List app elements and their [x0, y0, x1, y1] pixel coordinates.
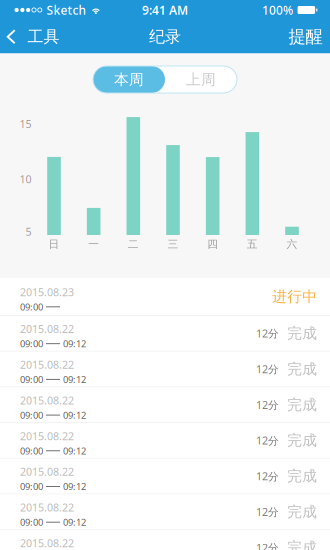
staticText: 完成: [287, 431, 317, 449]
staticText: 09:12: [63, 480, 86, 493]
staticText: 日: [48, 238, 59, 251]
staticText: 12分: [256, 505, 279, 519]
staticText: 10: [19, 172, 31, 186]
staticText: 完成: [287, 360, 317, 378]
staticText: 工具: [27, 27, 59, 47]
staticText: 2015.08.23: [20, 285, 74, 299]
staticText: 2015.08.22: [20, 393, 74, 407]
staticText: 纪录: [149, 27, 181, 47]
staticText: 12分: [256, 398, 279, 412]
staticText: Sketch: [46, 2, 86, 18]
button[interactable]: 2015.08.22: [0, 423, 330, 459]
staticText: 09:12: [63, 445, 86, 457]
staticText: 12分: [256, 540, 279, 550]
staticText: 五: [247, 238, 258, 251]
staticText: 完成: [287, 503, 317, 521]
staticText: 5: [25, 224, 31, 239]
staticText: 09:00: [20, 516, 43, 528]
staticText: 09:00: [20, 409, 43, 421]
staticText: 六: [286, 238, 297, 251]
button[interactable]: 工具: [0, 20, 69, 53]
staticText: 一: [88, 238, 99, 251]
staticText: 二: [128, 238, 139, 251]
staticText: 完成: [287, 467, 317, 485]
button[interactable]: 2015.08.23: [0, 278, 330, 316]
staticText: 完成: [287, 538, 317, 550]
button[interactable]: 2015.08.22: [0, 352, 330, 387]
staticText: 100%: [262, 2, 293, 18]
staticText: 上周: [186, 70, 216, 88]
staticText: 09:12: [63, 409, 86, 421]
staticText: 09:12: [63, 337, 86, 350]
staticText: 2015.08.22: [20, 357, 74, 372]
staticText: 12分: [256, 362, 279, 376]
staticText: 2015.08.22: [20, 500, 74, 514]
staticText: 09:00: [20, 445, 43, 457]
staticText: 三: [167, 238, 178, 251]
staticText: 12分: [256, 469, 279, 483]
button[interactable]: 上周: [165, 66, 237, 93]
staticText: 进行中: [272, 287, 317, 305]
button[interactable]: 2015.08.22: [0, 530, 330, 550]
staticText: 09:12: [63, 516, 86, 528]
staticText: 提醒: [288, 26, 322, 47]
staticText: 四: [207, 238, 218, 251]
button[interactable]: 2015.08.22: [0, 459, 330, 494]
button[interactable]: 提醒: [278, 20, 330, 53]
staticText: 12分: [256, 326, 279, 340]
staticText: 09:12: [63, 373, 86, 386]
staticText: 本周: [114, 70, 144, 88]
staticText: 09:00: [20, 301, 43, 313]
staticText: 9:41 AM: [142, 2, 188, 18]
staticText: 2015.08.22: [20, 465, 74, 479]
staticText: 09:00: [20, 480, 43, 493]
button[interactable]: 本周: [93, 66, 165, 93]
staticText: 2015.08.22: [20, 322, 74, 336]
staticText: 2015.08.22: [20, 536, 74, 550]
button[interactable]: 2015.08.22: [0, 494, 330, 530]
staticText: 完成: [287, 324, 317, 342]
button[interactable]: 2015.08.22: [0, 387, 330, 423]
staticText: 15: [19, 117, 31, 131]
staticText: 完成: [287, 396, 317, 414]
staticText: 09:00: [20, 373, 43, 386]
staticText: 09:00: [20, 337, 43, 350]
button[interactable]: 2015.08.22: [0, 316, 330, 352]
staticText: 2015.08.22: [20, 429, 74, 443]
staticText: 12分: [256, 433, 279, 448]
